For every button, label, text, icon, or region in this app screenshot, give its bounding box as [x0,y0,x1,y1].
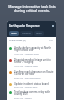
staticText: 09:58 AM · Field operations [14,77,41,80]
button[interactable]: Update incident status board [9,82,54,90]
button[interactable]: Timeline [20,31,33,36]
staticText: Active Tasks (5) [9,39,26,42]
staticText: 09:30 AM · Comms desk [14,86,38,89]
button[interactable]: Verify shelter capacity at North High Sc… [9,46,54,58]
button[interactable]: Confirm road clearance on Route 14 north… [9,70,54,82]
button[interactable]: Team [34,31,44,36]
staticText: Dispatch medical triage unit to Sector 7… [14,58,54,64]
staticText: Update incident status board [14,82,49,85]
staticText: Manage interactive task lists during cri… [3,4,61,13]
staticText: Tasks [11,32,17,35]
staticText: Timeline [22,32,31,35]
staticText: Confirm road clearance on Route 14 north… [14,70,54,76]
staticText: Verify shelter capacity at North High Sc… [14,46,54,52]
staticText: Earthquake Response [9,24,40,28]
staticText: Team [36,32,42,35]
staticText: 09:02 AM · Signals [14,97,32,100]
staticText: 10:42 AM · Logistics team [14,53,39,56]
staticText: 10:15 AM · Medical team [14,65,39,68]
staticText: Sort [49,39,54,42]
staticText: Test backup comms relay with county EOC [14,90,54,96]
button[interactable]: Tasks [9,31,19,36]
button[interactable]: Dispatch medical triage unit to Sector 7… [9,58,54,70]
button[interactable]: Test backup comms relay with county EOC [9,90,54,100]
